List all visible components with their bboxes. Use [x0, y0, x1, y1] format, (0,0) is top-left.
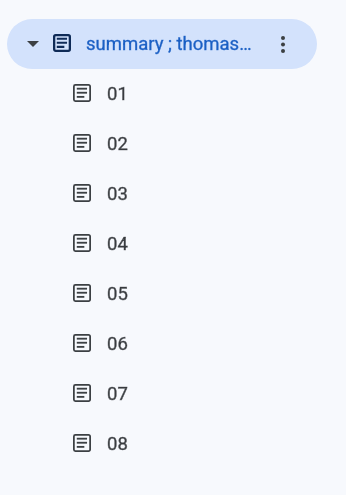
- staticText: 04: [107, 233, 128, 255]
- button[interactable]: 02: [0, 119, 346, 169]
- button[interactable]: Collapse: [20, 31, 46, 57]
- staticText: 06: [107, 333, 128, 355]
- button[interactable]: 01: [0, 69, 346, 119]
- button[interactable]: 04: [0, 219, 346, 269]
- button[interactable]: 03: [0, 169, 346, 219]
- staticText: 08: [107, 433, 128, 455]
- button[interactable]: 08: [0, 419, 346, 469]
- button[interactable]: 07: [0, 369, 346, 419]
- button[interactable]: 06: [0, 319, 346, 369]
- button[interactable]: Collapse: [7, 19, 317, 69]
- staticText: 07: [107, 383, 128, 405]
- button[interactable]: More options: [263, 24, 303, 64]
- staticText: 03: [107, 183, 128, 205]
- staticText: 02: [107, 133, 128, 155]
- staticText: 05: [107, 283, 128, 305]
- staticText: summary ; thomas…: [86, 33, 252, 55]
- staticText: 01: [107, 83, 128, 105]
- button[interactable]: 05: [0, 269, 346, 319]
